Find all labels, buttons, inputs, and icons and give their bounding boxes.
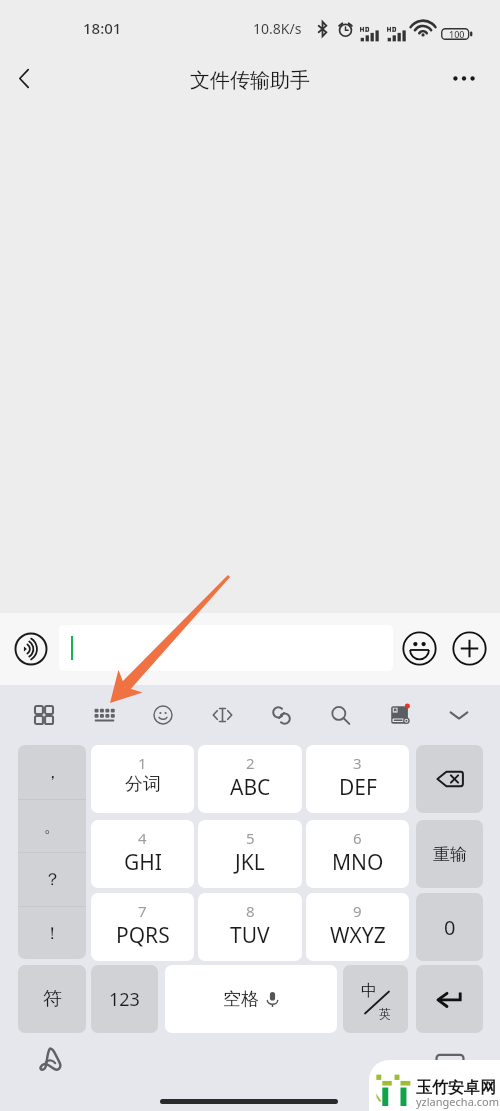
staticText: TUV: [230, 921, 270, 950]
staticText: 10.8K/s: [253, 19, 302, 38]
staticText: 123: [109, 987, 140, 1012]
staticText: 0: [444, 914, 456, 941]
staticText: 9: [353, 901, 362, 921]
staticText: 1: [138, 753, 147, 773]
button[interactable]: [416, 745, 483, 813]
staticText: 4: [138, 828, 147, 848]
staticText: ABC: [230, 773, 271, 802]
button[interactable]: 空格: [165, 965, 337, 1033]
staticText: 5: [246, 828, 255, 848]
staticText: 2: [246, 753, 255, 773]
button[interactable]: Emoji: [400, 629, 439, 668]
button[interactable]: Switch keyboard: [434, 1051, 466, 1077]
button[interactable]: 4: [91, 820, 194, 888]
staticText: WXYZ: [330, 921, 386, 950]
staticText: 18:01: [83, 18, 122, 38]
staticText: 。: [44, 816, 61, 837]
button[interactable]: Keyboard layouts: [26, 697, 62, 733]
button[interactable]: ，: [18, 745, 86, 799]
button[interactable]: Hide keyboard: [441, 697, 477, 733]
button[interactable]: Search: [322, 697, 358, 733]
button[interactable]: 重输: [416, 820, 483, 888]
staticText: 英: [379, 1006, 391, 1021]
staticText: 6: [353, 828, 362, 848]
button[interactable]: Emoji: [145, 697, 181, 733]
button[interactable]: 7: [91, 893, 194, 961]
button[interactable]: 0: [416, 893, 483, 961]
staticText: 分词: [125, 773, 161, 796]
button[interactable]: Keyboard settings: [34, 1043, 66, 1075]
staticText: 空格: [223, 988, 259, 1011]
button[interactable]: 6: [306, 820, 409, 888]
staticText: 3: [353, 753, 362, 773]
button[interactable]: [416, 965, 483, 1033]
staticText: 文件传输助手: [190, 68, 310, 93]
staticText: PQRS: [116, 921, 170, 950]
button[interactable]: Keyboard: [86, 697, 122, 733]
button[interactable]: [59, 625, 393, 671]
button[interactable]: ！: [18, 906, 86, 959]
staticText: ，: [44, 762, 61, 783]
staticText: GHI: [124, 848, 162, 877]
button[interactable]: Dictionary: [382, 697, 418, 733]
button[interactable]: More options: [442, 56, 486, 100]
button[interactable]: 3: [306, 745, 409, 813]
button[interactable]: 中: [343, 965, 408, 1033]
staticText: JKL: [235, 848, 265, 877]
staticText: 重输: [433, 844, 467, 865]
button[interactable]: 8: [198, 893, 302, 961]
staticText: ！: [44, 923, 61, 944]
button[interactable]: Move cursor: [204, 697, 240, 733]
button[interactable]: 5: [198, 820, 302, 888]
staticText: DEF: [339, 773, 377, 802]
button[interactable]: 9: [306, 893, 409, 961]
button[interactable]: 2: [198, 745, 302, 813]
staticText: yzlangecha.com: [416, 1094, 499, 1109]
button[interactable]: 。: [18, 799, 86, 853]
button[interactable]: Clip: [263, 697, 299, 733]
button[interactable]: 1: [91, 745, 194, 813]
button[interactable]: Back: [2, 56, 46, 100]
button[interactable]: More: [450, 629, 489, 668]
button[interactable]: ？: [18, 852, 86, 906]
button[interactable]: 123: [91, 965, 158, 1033]
staticText: ？: [44, 869, 61, 890]
staticText: 符: [43, 987, 62, 1011]
button[interactable]: 符: [18, 965, 86, 1033]
staticText: 7: [138, 901, 147, 921]
staticText: 中: [361, 981, 377, 1001]
button[interactable]: Voice input: [10, 628, 51, 669]
staticText: 100: [449, 28, 465, 40]
staticText: 玉竹安卓网: [416, 1078, 496, 1098]
staticText: 8: [246, 901, 255, 921]
staticText: MNO: [332, 848, 384, 877]
